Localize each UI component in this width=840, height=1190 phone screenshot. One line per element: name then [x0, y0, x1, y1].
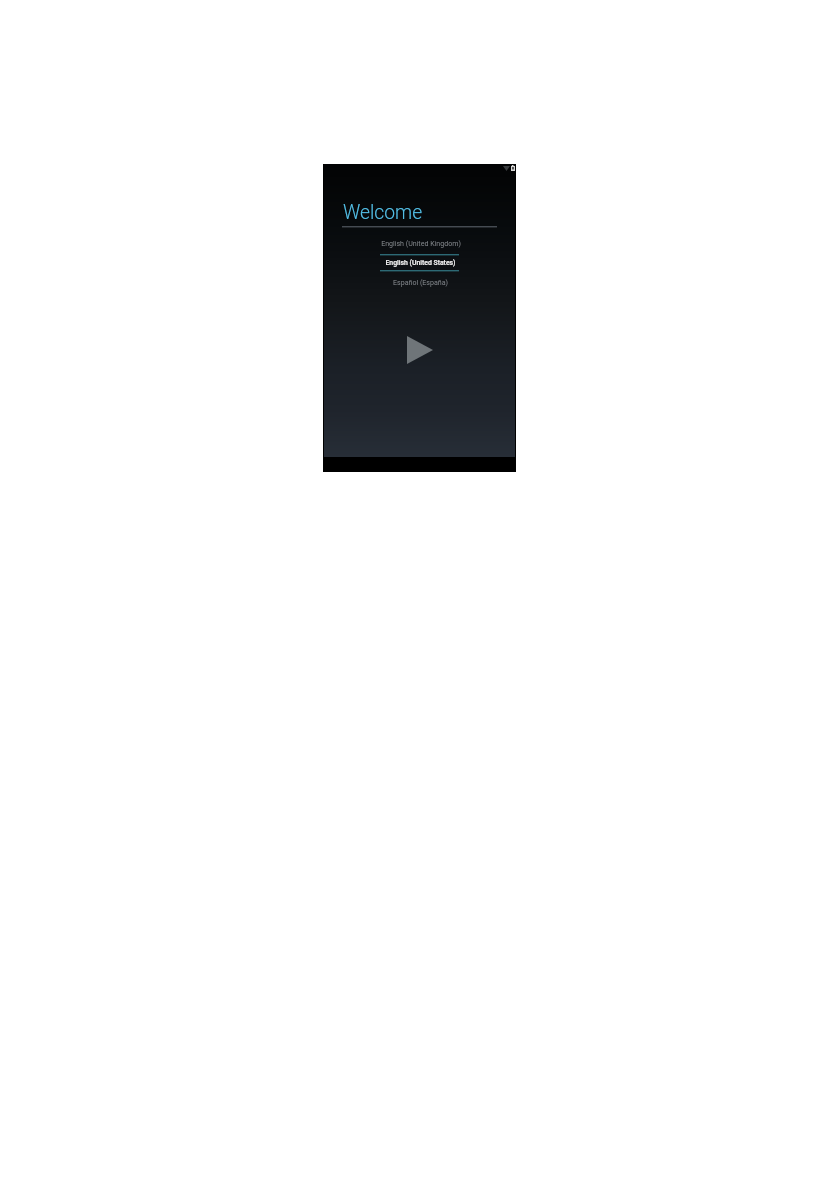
staticText: English (United Kingdom) — [381, 239, 461, 247]
staticText: Español (España) — [393, 278, 448, 286]
staticText: Welcome — [343, 201, 423, 224]
button[interactable]: Next — [401, 331, 438, 369]
button[interactable]: Español (España) — [325, 278, 516, 288]
button[interactable]: English (United States) — [325, 259, 516, 270]
button[interactable]: English (United Kingdom) — [325, 239, 516, 249]
staticText: English (United States) — [385, 259, 456, 267]
